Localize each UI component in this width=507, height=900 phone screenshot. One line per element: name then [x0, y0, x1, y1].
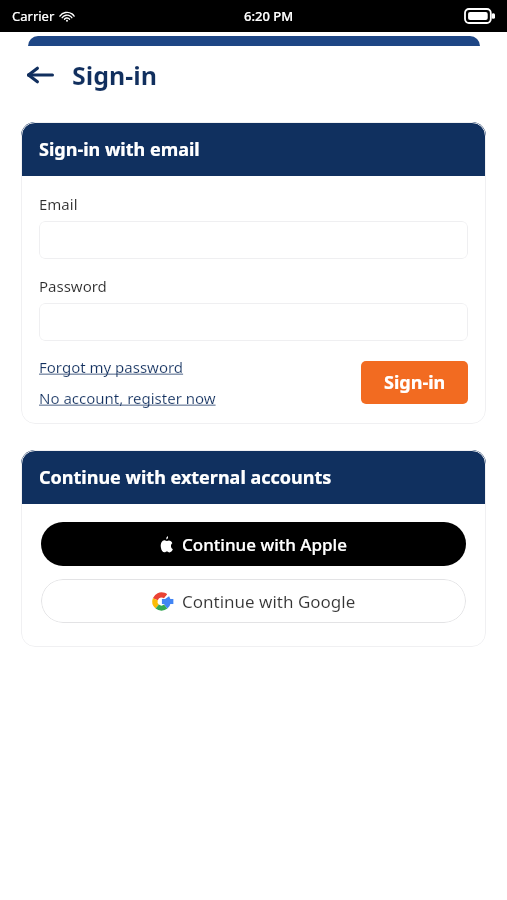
staticText: Forgot my password: [39, 357, 184, 377]
button[interactable]: Back: [16, 51, 64, 99]
button[interactable]: Sign-in: [361, 361, 468, 404]
button[interactable]: Email field: [39, 221, 468, 259]
staticText: Carrier: [12, 7, 55, 25]
staticText: No account, register now: [39, 388, 216, 408]
staticText: Email: [39, 194, 78, 214]
staticText: Continue with Google: [182, 590, 356, 613]
button[interactable]: Password field: [39, 303, 468, 341]
button[interactable]: Continue with Google: [41, 579, 466, 623]
staticText: Continue with external accounts: [39, 465, 332, 490]
button[interactable]: Continue with Apple: [41, 522, 466, 566]
staticText: Sign-in with email: [39, 137, 200, 162]
staticText: Password: [39, 276, 107, 296]
staticText: 6:20 PM: [244, 7, 294, 25]
staticText: Sign-in: [384, 370, 446, 395]
button[interactable]: Forgot my password: [39, 357, 184, 377]
staticText: Continue with Apple: [182, 533, 347, 556]
button[interactable]: No account, register now: [39, 388, 216, 408]
staticText: Sign-in: [72, 58, 158, 92]
